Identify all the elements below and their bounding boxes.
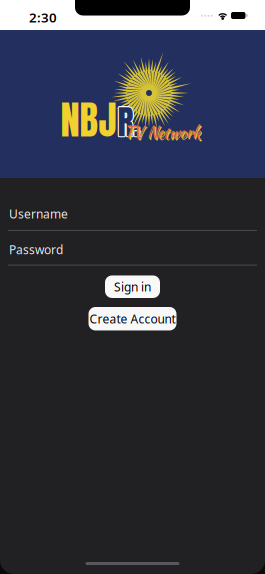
staticText: 2:30 (29, 8, 57, 26)
staticText: Username (9, 206, 68, 222)
staticText: R. (117, 98, 141, 148)
staticText: R. (117, 97, 141, 147)
staticText: TV Network (124, 121, 200, 144)
staticText: TV Network (125, 122, 201, 145)
staticText: NBJ (60, 91, 116, 149)
staticText: Password (9, 242, 63, 258)
button[interactable]: Username (0, 206, 257, 231)
button[interactable]: Sign in (105, 275, 160, 298)
staticText: R. (117, 96, 141, 146)
staticText: R. (118, 96, 142, 146)
staticText: R. (116, 97, 140, 147)
button[interactable]: Create Account (88, 307, 176, 330)
staticText: R. (119, 97, 143, 147)
staticText: R. (117, 98, 141, 148)
button[interactable]: Password (0, 242, 257, 265)
staticText: Sign in (114, 279, 151, 295)
staticText: R. (117, 96, 141, 146)
staticText: R. (118, 98, 142, 148)
staticText: Create Account (89, 311, 175, 327)
